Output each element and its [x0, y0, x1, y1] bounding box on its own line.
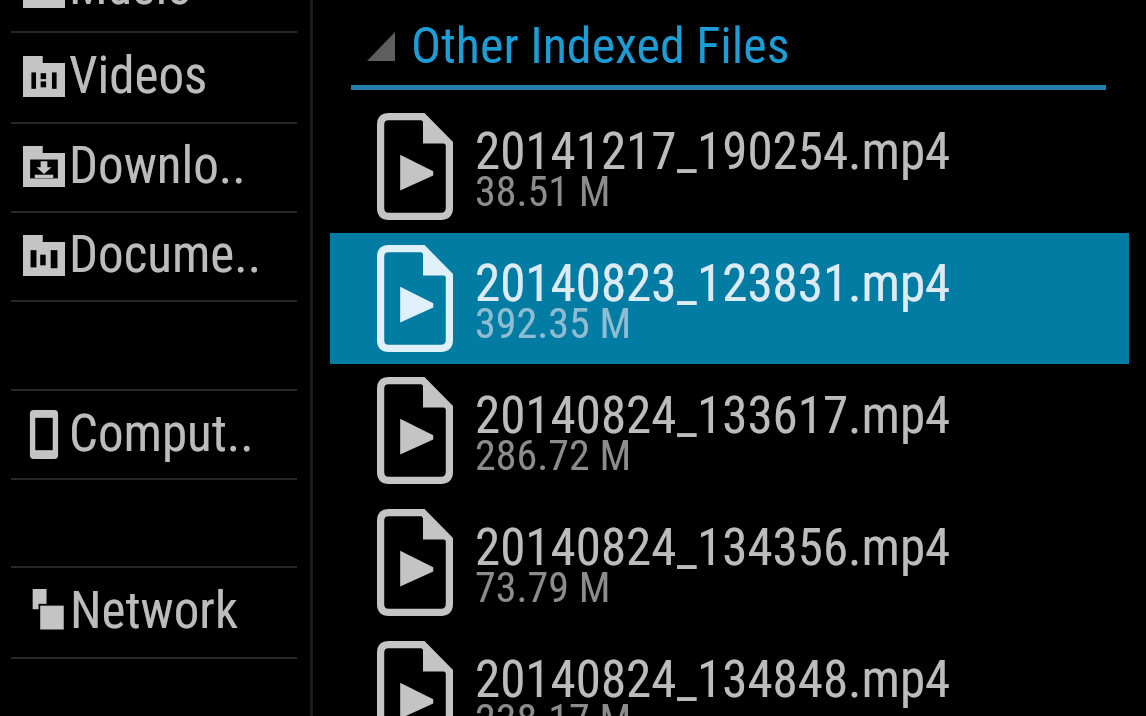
- staticText: Music: [69, 0, 191, 17]
- button[interactable]: Downlo..: [0, 122, 311, 210]
- button[interactable]: Music: [0, 0, 311, 31]
- button[interactable]: Comput..: [0, 390, 311, 478]
- button[interactable]: 20140824_134356.mp4: [330, 497, 1129, 628]
- button[interactable]: Videos: [0, 32, 311, 120]
- staticText: 20140823_123831.mp4: [475, 254, 951, 314]
- staticText: 38.51 M: [475, 167, 611, 216]
- staticText: Docume..: [69, 225, 262, 285]
- button[interactable]: 20141217_190254.mp4: [330, 101, 1129, 232]
- staticText: 20140824_134848.mp4: [475, 650, 951, 710]
- staticText: 392.35 M: [475, 299, 632, 348]
- staticText: Videos: [69, 46, 208, 106]
- staticText: 20141217_190254.mp4: [475, 122, 951, 182]
- staticText: Comput..: [69, 404, 254, 464]
- button[interactable]: Other Indexed Files: [313, 17, 1146, 69]
- staticText: 238.17 M: [475, 695, 632, 716]
- staticText: 286.72 M: [475, 431, 632, 480]
- staticText: Downlo..: [69, 136, 246, 196]
- staticText: Network: [70, 581, 238, 641]
- button[interactable]: 20140823_123831.mp4: [330, 233, 1129, 364]
- staticText: 20140824_133617.mp4: [475, 386, 951, 446]
- staticText: 73.79 M: [475, 563, 611, 612]
- button[interactable]: Network: [0, 567, 311, 655]
- button[interactable]: 20140824_134848.mp4: [330, 629, 1129, 716]
- staticText: Other Indexed Files: [411, 17, 790, 69]
- staticText: 20140824_134356.mp4: [475, 518, 951, 578]
- button[interactable]: Docume..: [0, 211, 311, 299]
- button[interactable]: 20140824_133617.mp4: [330, 365, 1129, 496]
